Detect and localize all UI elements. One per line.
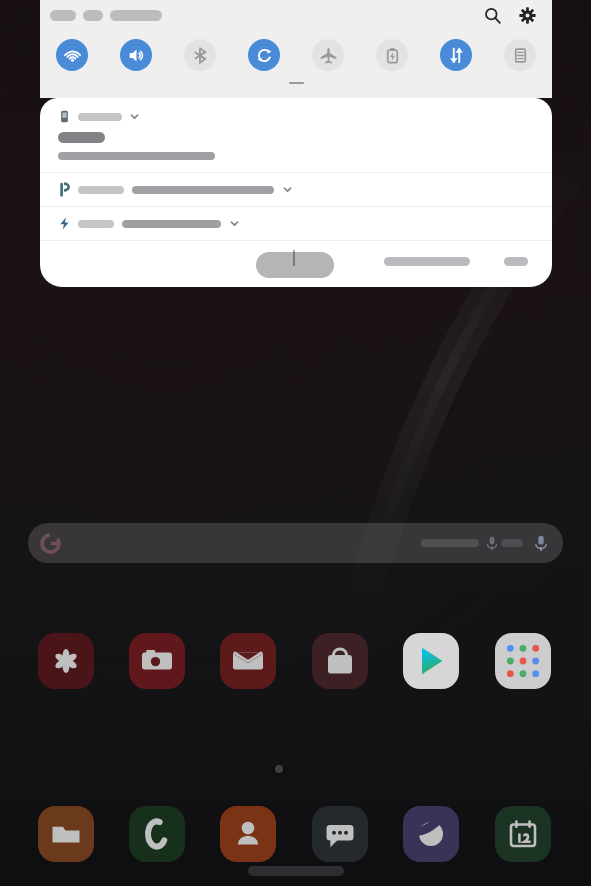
button[interactable]: Play Store: [403, 633, 459, 689]
button[interactable]: Email: [220, 633, 276, 689]
button[interactable]: Auto rotate: [248, 39, 280, 71]
button[interactable]: Contacts: [220, 806, 276, 862]
button[interactable]: Clear all: [498, 252, 534, 271]
button[interactable]: Galaxy Store: [312, 633, 368, 689]
button[interactable]: Expand: [40, 98, 552, 172]
button[interactable]: Wi-Fi: [56, 39, 88, 71]
button[interactable]: Notification settings: [378, 252, 476, 271]
button[interactable]: Mobile data: [440, 39, 472, 71]
button[interactable]: Settings: [512, 0, 542, 30]
button[interactable]: Sound: [120, 39, 152, 71]
button[interactable]: Messages: [312, 806, 368, 862]
button[interactable]: Power saving: [376, 39, 408, 71]
button[interactable]: Search: [477, 0, 507, 30]
button[interactable]: Collapse: [289, 82, 304, 84]
button[interactable]: Camera: [129, 633, 185, 689]
button[interactable]: Calendar: [495, 806, 551, 862]
button[interactable]: Reading mode: [504, 39, 536, 71]
button[interactable]: Internet: [403, 806, 459, 862]
other: Voice search: [533, 535, 549, 551]
button[interactable]: Bluetooth: [184, 39, 216, 71]
other: Expand: [282, 184, 293, 195]
button[interactable]: Google folder: [495, 633, 551, 689]
button[interactable]: Voice search: [28, 523, 563, 563]
other: Expand: [129, 111, 140, 122]
button[interactable]: Gallery: [38, 633, 94, 689]
button[interactable]: Phone: [129, 806, 185, 862]
other: Expand: [229, 218, 240, 229]
button[interactable]: Expand: [40, 173, 552, 206]
button[interactable]: My Files: [38, 806, 94, 862]
button[interactable]: Expand: [40, 207, 552, 240]
button[interactable]: Flight mode: [312, 39, 344, 71]
